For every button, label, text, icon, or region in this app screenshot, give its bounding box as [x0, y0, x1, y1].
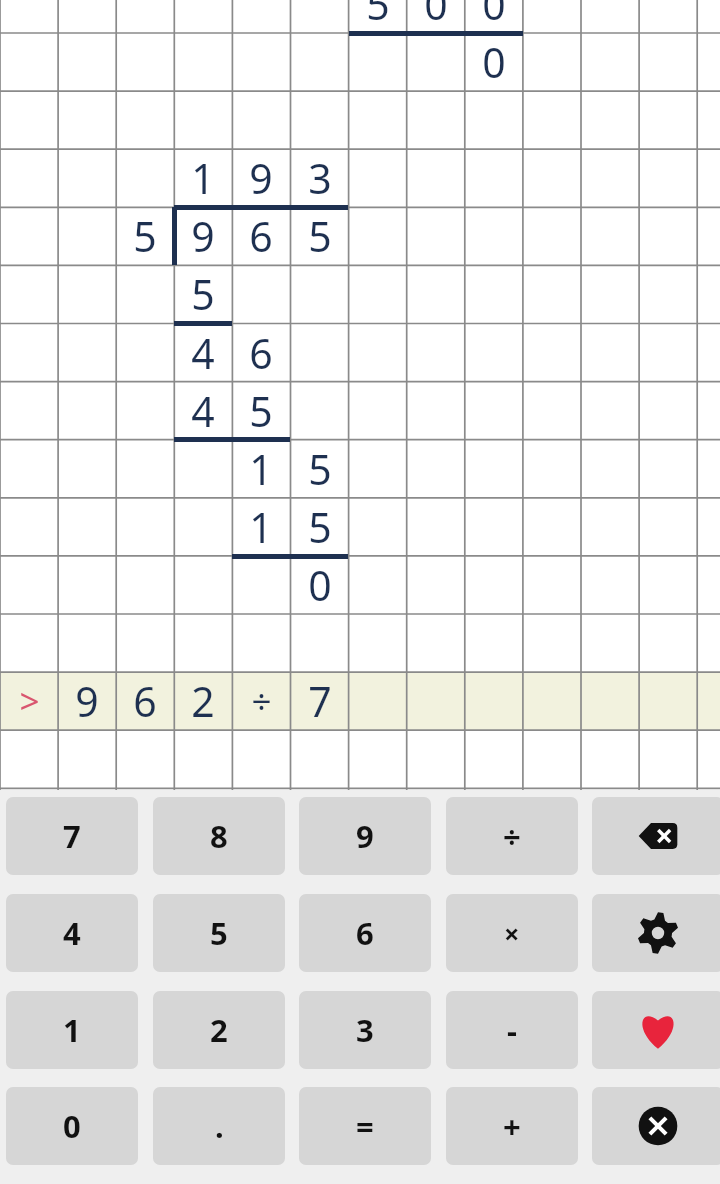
- staticText: 3: [356, 1009, 374, 1051]
- button[interactable]: Clear: [592, 1087, 720, 1165]
- staticText: 6: [249, 325, 273, 381]
- staticText: 3: [308, 150, 332, 206]
- staticText: 5: [308, 499, 332, 555]
- staticText: .: [215, 1105, 224, 1147]
- staticText: 5: [308, 441, 332, 497]
- staticText: 5: [249, 383, 273, 439]
- button[interactable]: +: [446, 1087, 578, 1165]
- staticText: 6: [133, 673, 157, 729]
- staticText: 0: [63, 1105, 81, 1147]
- button[interactable]: -: [446, 991, 578, 1069]
- button[interactable]: 7: [6, 797, 138, 875]
- button[interactable]: ÷: [446, 797, 578, 875]
- staticText: 0: [482, 0, 506, 32]
- staticText: 4: [191, 325, 215, 381]
- staticText: 0: [308, 557, 332, 613]
- staticText: =: [356, 1105, 374, 1147]
- staticText: 9: [249, 150, 273, 206]
- staticText: ÷: [251, 677, 272, 725]
- button[interactable]: 0: [6, 1087, 138, 1165]
- button[interactable]: Backspace: [592, 797, 720, 875]
- button[interactable]: 6: [299, 894, 431, 972]
- staticText: 1: [191, 150, 215, 206]
- button[interactable]: 8: [153, 797, 285, 875]
- staticText: 6: [356, 912, 374, 954]
- button[interactable]: [0, 672, 720, 730]
- staticText: -: [507, 1009, 517, 1051]
- staticText: 4: [63, 912, 81, 954]
- staticText: 7: [63, 815, 81, 857]
- staticText: 2: [210, 1009, 228, 1051]
- button[interactable]: ×: [446, 894, 578, 972]
- button[interactable]: 3: [299, 991, 431, 1069]
- staticText: 5: [366, 0, 390, 32]
- staticText: ×: [504, 915, 520, 952]
- button[interactable]: =: [299, 1087, 431, 1165]
- button[interactable]: 9: [299, 797, 431, 875]
- staticText: 9: [356, 815, 374, 857]
- button[interactable]: Settings: [592, 894, 720, 972]
- staticText: 5: [308, 208, 332, 264]
- staticText: 9: [75, 673, 99, 729]
- staticText: 9: [191, 208, 215, 264]
- staticText: 1: [63, 1009, 81, 1051]
- staticText: 1: [249, 499, 273, 555]
- button[interactable]: 2: [153, 991, 285, 1069]
- staticText: 7: [308, 673, 332, 729]
- staticText: 1: [249, 441, 273, 497]
- staticText: 2: [191, 673, 215, 729]
- button[interactable]: 4: [6, 894, 138, 972]
- button[interactable]: 5: [153, 894, 285, 972]
- staticText: ÷: [503, 815, 521, 857]
- staticText: >: [19, 677, 40, 725]
- staticText: 8: [210, 815, 228, 857]
- button[interactable]: Favorite: [592, 991, 720, 1069]
- staticText: +: [503, 1105, 521, 1147]
- staticText: 6: [249, 208, 273, 264]
- staticText: 5: [133, 208, 157, 264]
- button[interactable]: 1: [6, 991, 138, 1069]
- staticText: 5: [191, 266, 215, 322]
- staticText: 0: [424, 0, 448, 32]
- button[interactable]: .: [153, 1087, 285, 1165]
- staticText: 0: [482, 34, 506, 90]
- staticText: 5: [210, 912, 228, 954]
- staticText: 4: [191, 383, 215, 439]
